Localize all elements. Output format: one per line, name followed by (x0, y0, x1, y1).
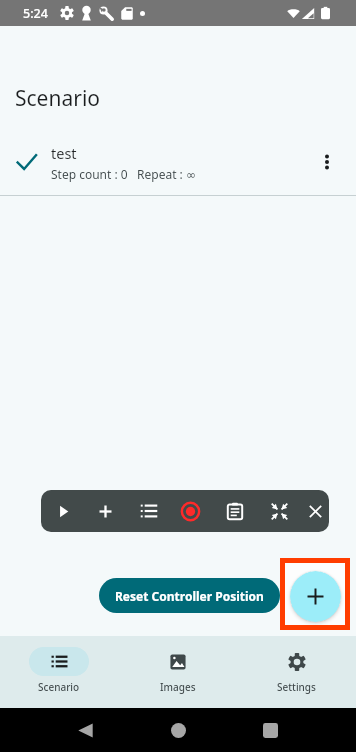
button[interactable]: Home (158, 710, 198, 750)
button[interactable]: Clipboard (215, 490, 255, 532)
button[interactable]: Play (43, 490, 83, 532)
button[interactable]: Add (290, 571, 341, 622)
button[interactable]: Reset Controller Position (99, 578, 280, 613)
button[interactable]: Collapse (259, 490, 299, 532)
button[interactable]: Back (65, 710, 105, 750)
button[interactable]: List (129, 490, 169, 532)
button[interactable]: test (0, 137, 356, 187)
button[interactable]: Record (170, 490, 210, 532)
staticText: Scenario (38, 680, 80, 694)
button[interactable]: Close (295, 490, 335, 532)
staticText: test (51, 143, 77, 163)
staticText: Reset Controller Position (115, 588, 264, 604)
button[interactable]: More options (303, 138, 351, 186)
button[interactable]: Scenario (0, 636, 118, 708)
staticText: Settings (277, 680, 316, 694)
staticText: Images (160, 680, 196, 694)
staticText: Scenario (15, 84, 101, 113)
button[interactable]: Settings (237, 636, 356, 708)
button[interactable]: Add (85, 490, 125, 532)
staticText: Step count : 0 Repeat : ∞ (51, 166, 196, 182)
staticText: 5:24 (23, 5, 48, 22)
button[interactable]: Images (118, 636, 237, 708)
button[interactable]: Recents (250, 710, 290, 750)
